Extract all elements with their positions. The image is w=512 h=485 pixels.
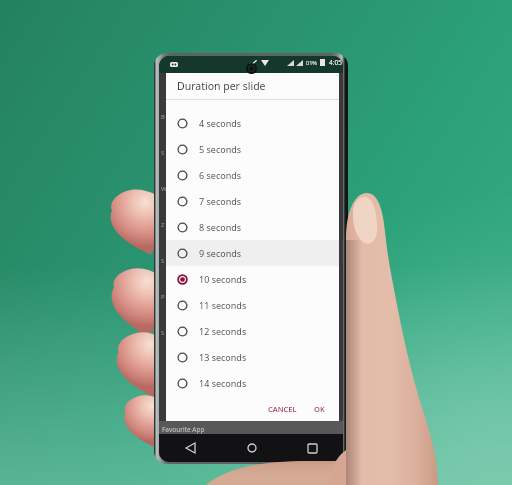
staticText: 5 seconds <box>199 143 242 155</box>
staticText: Duration per slide <box>177 79 266 93</box>
button[interactable]: 8 seconds <box>166 214 339 240</box>
staticText: 11 seconds <box>199 299 247 311</box>
button[interactable]: 11 seconds <box>166 292 339 318</box>
staticText: OK <box>314 404 325 414</box>
button[interactable]: 5 seconds <box>166 136 339 162</box>
staticText: 9 seconds <box>199 247 242 259</box>
staticText: Favourite App <box>162 425 205 434</box>
staticText: 4:05 <box>329 58 342 67</box>
staticText: 01% <box>306 59 317 66</box>
staticText: 7 seconds <box>199 195 242 207</box>
staticText: CANCEL <box>268 404 297 414</box>
button[interactable]: Recent apps <box>282 434 343 462</box>
button[interactable]: 13 seconds <box>166 344 339 370</box>
button[interactable]: 9 seconds <box>166 240 339 266</box>
button[interactable]: CANCEL <box>263 399 302 419</box>
staticText: B <box>161 113 165 121</box>
staticText: S <box>161 149 165 157</box>
staticText: 8 seconds <box>199 221 242 233</box>
button[interactable]: 6 seconds <box>166 162 339 188</box>
staticText: 4 seconds <box>199 117 242 129</box>
staticText: S <box>161 257 165 265</box>
button[interactable]: 4 seconds <box>166 110 339 136</box>
button[interactable]: OK <box>309 399 330 419</box>
button[interactable]: 10 seconds <box>166 266 339 292</box>
staticText: S <box>161 329 165 337</box>
button[interactable]: 12 seconds <box>166 318 339 344</box>
button[interactable]: Home <box>221 434 282 462</box>
staticText: 6 seconds <box>199 169 242 181</box>
staticText: Z <box>161 221 165 229</box>
button[interactable]: Back <box>159 434 221 462</box>
button[interactable]: 14 seconds <box>166 370 339 396</box>
staticText: 12 seconds <box>199 325 247 337</box>
staticText: W <box>161 185 167 193</box>
staticText: 10 seconds <box>199 273 247 285</box>
staticText: 13 seconds <box>199 351 247 363</box>
staticText: 14 seconds <box>199 377 247 389</box>
button[interactable]: 7 seconds <box>166 188 339 214</box>
staticText: P <box>161 293 165 301</box>
